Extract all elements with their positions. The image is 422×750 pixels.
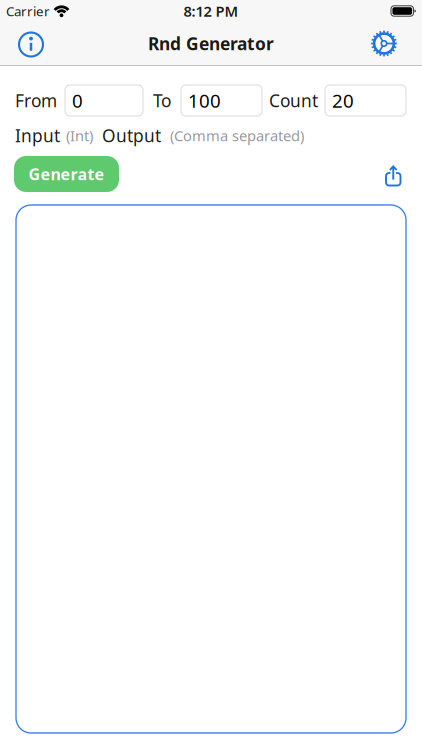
staticText: 0 (72, 88, 83, 113)
staticText: (Comma separated) (170, 126, 304, 145)
staticText: 100 (188, 88, 221, 113)
staticText: Output (102, 124, 161, 147)
staticText: From (15, 89, 57, 112)
button[interactable]: About (17, 29, 45, 57)
button[interactable]: Generate (14, 156, 119, 192)
button[interactable]: From value (65, 85, 143, 116)
staticText: Carrier (6, 2, 50, 20)
button[interactable]: Settings (370, 29, 398, 57)
staticText: Rnd Generator (148, 32, 274, 55)
staticText: Count (269, 89, 318, 112)
button[interactable]: Share (381, 160, 405, 188)
staticText: Generate (28, 163, 104, 185)
button[interactable]: To value (181, 85, 262, 116)
staticText: 20 (332, 88, 354, 113)
button[interactable]: Output (16, 205, 406, 733)
staticText: (Int) (66, 126, 93, 145)
staticText: To (153, 89, 171, 112)
staticText: Input (15, 124, 60, 147)
button[interactable]: Count value (325, 85, 406, 116)
staticText: 8:12 PM (183, 1, 238, 21)
